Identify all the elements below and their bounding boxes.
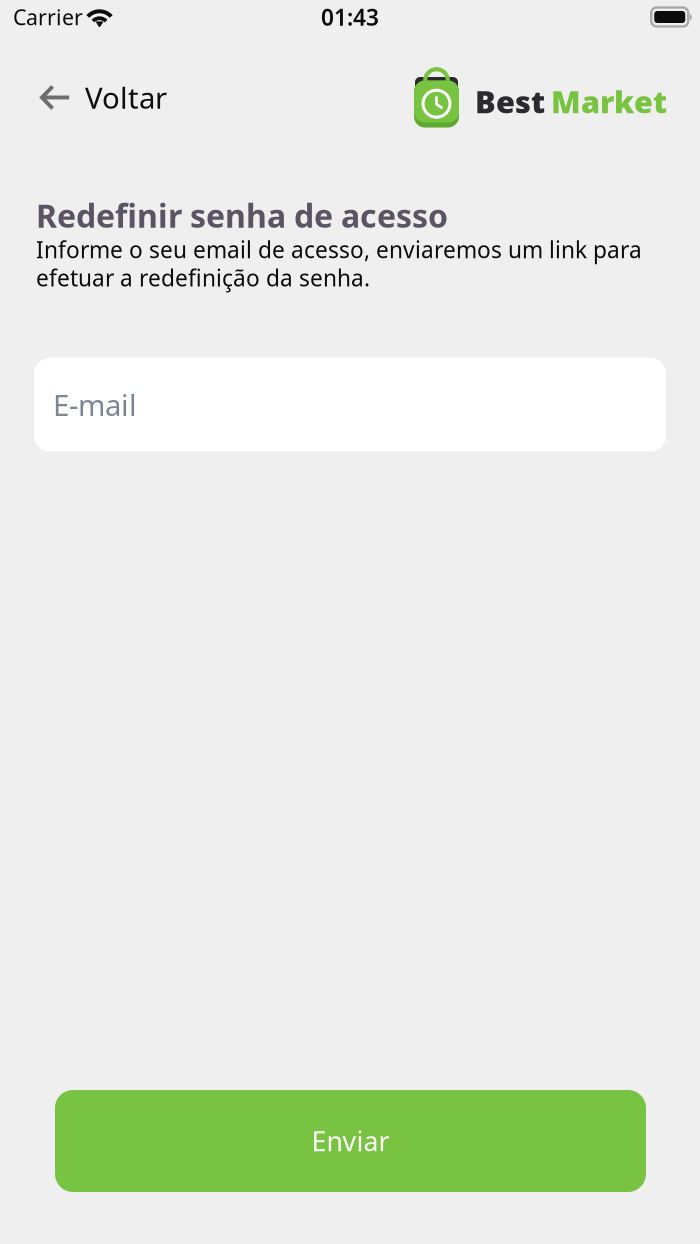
button[interactable]: Voltar: [40, 68, 167, 127]
staticText: Carrier: [13, 3, 83, 31]
staticText: Voltar: [85, 78, 167, 117]
staticText: Redefinir senha de acesso: [36, 194, 448, 236]
staticText: Market: [551, 81, 667, 122]
staticText: efetuar a redefinição da senha.: [36, 263, 370, 293]
staticText: E-mail: [53, 385, 137, 424]
staticText: Best: [475, 81, 545, 122]
staticText: Enviar: [311, 1123, 389, 1159]
button[interactable]: Enviar: [55, 1090, 646, 1192]
staticText: 01:43: [321, 2, 379, 32]
staticText: Informe o seu email de acesso, enviaremo…: [36, 234, 642, 265]
